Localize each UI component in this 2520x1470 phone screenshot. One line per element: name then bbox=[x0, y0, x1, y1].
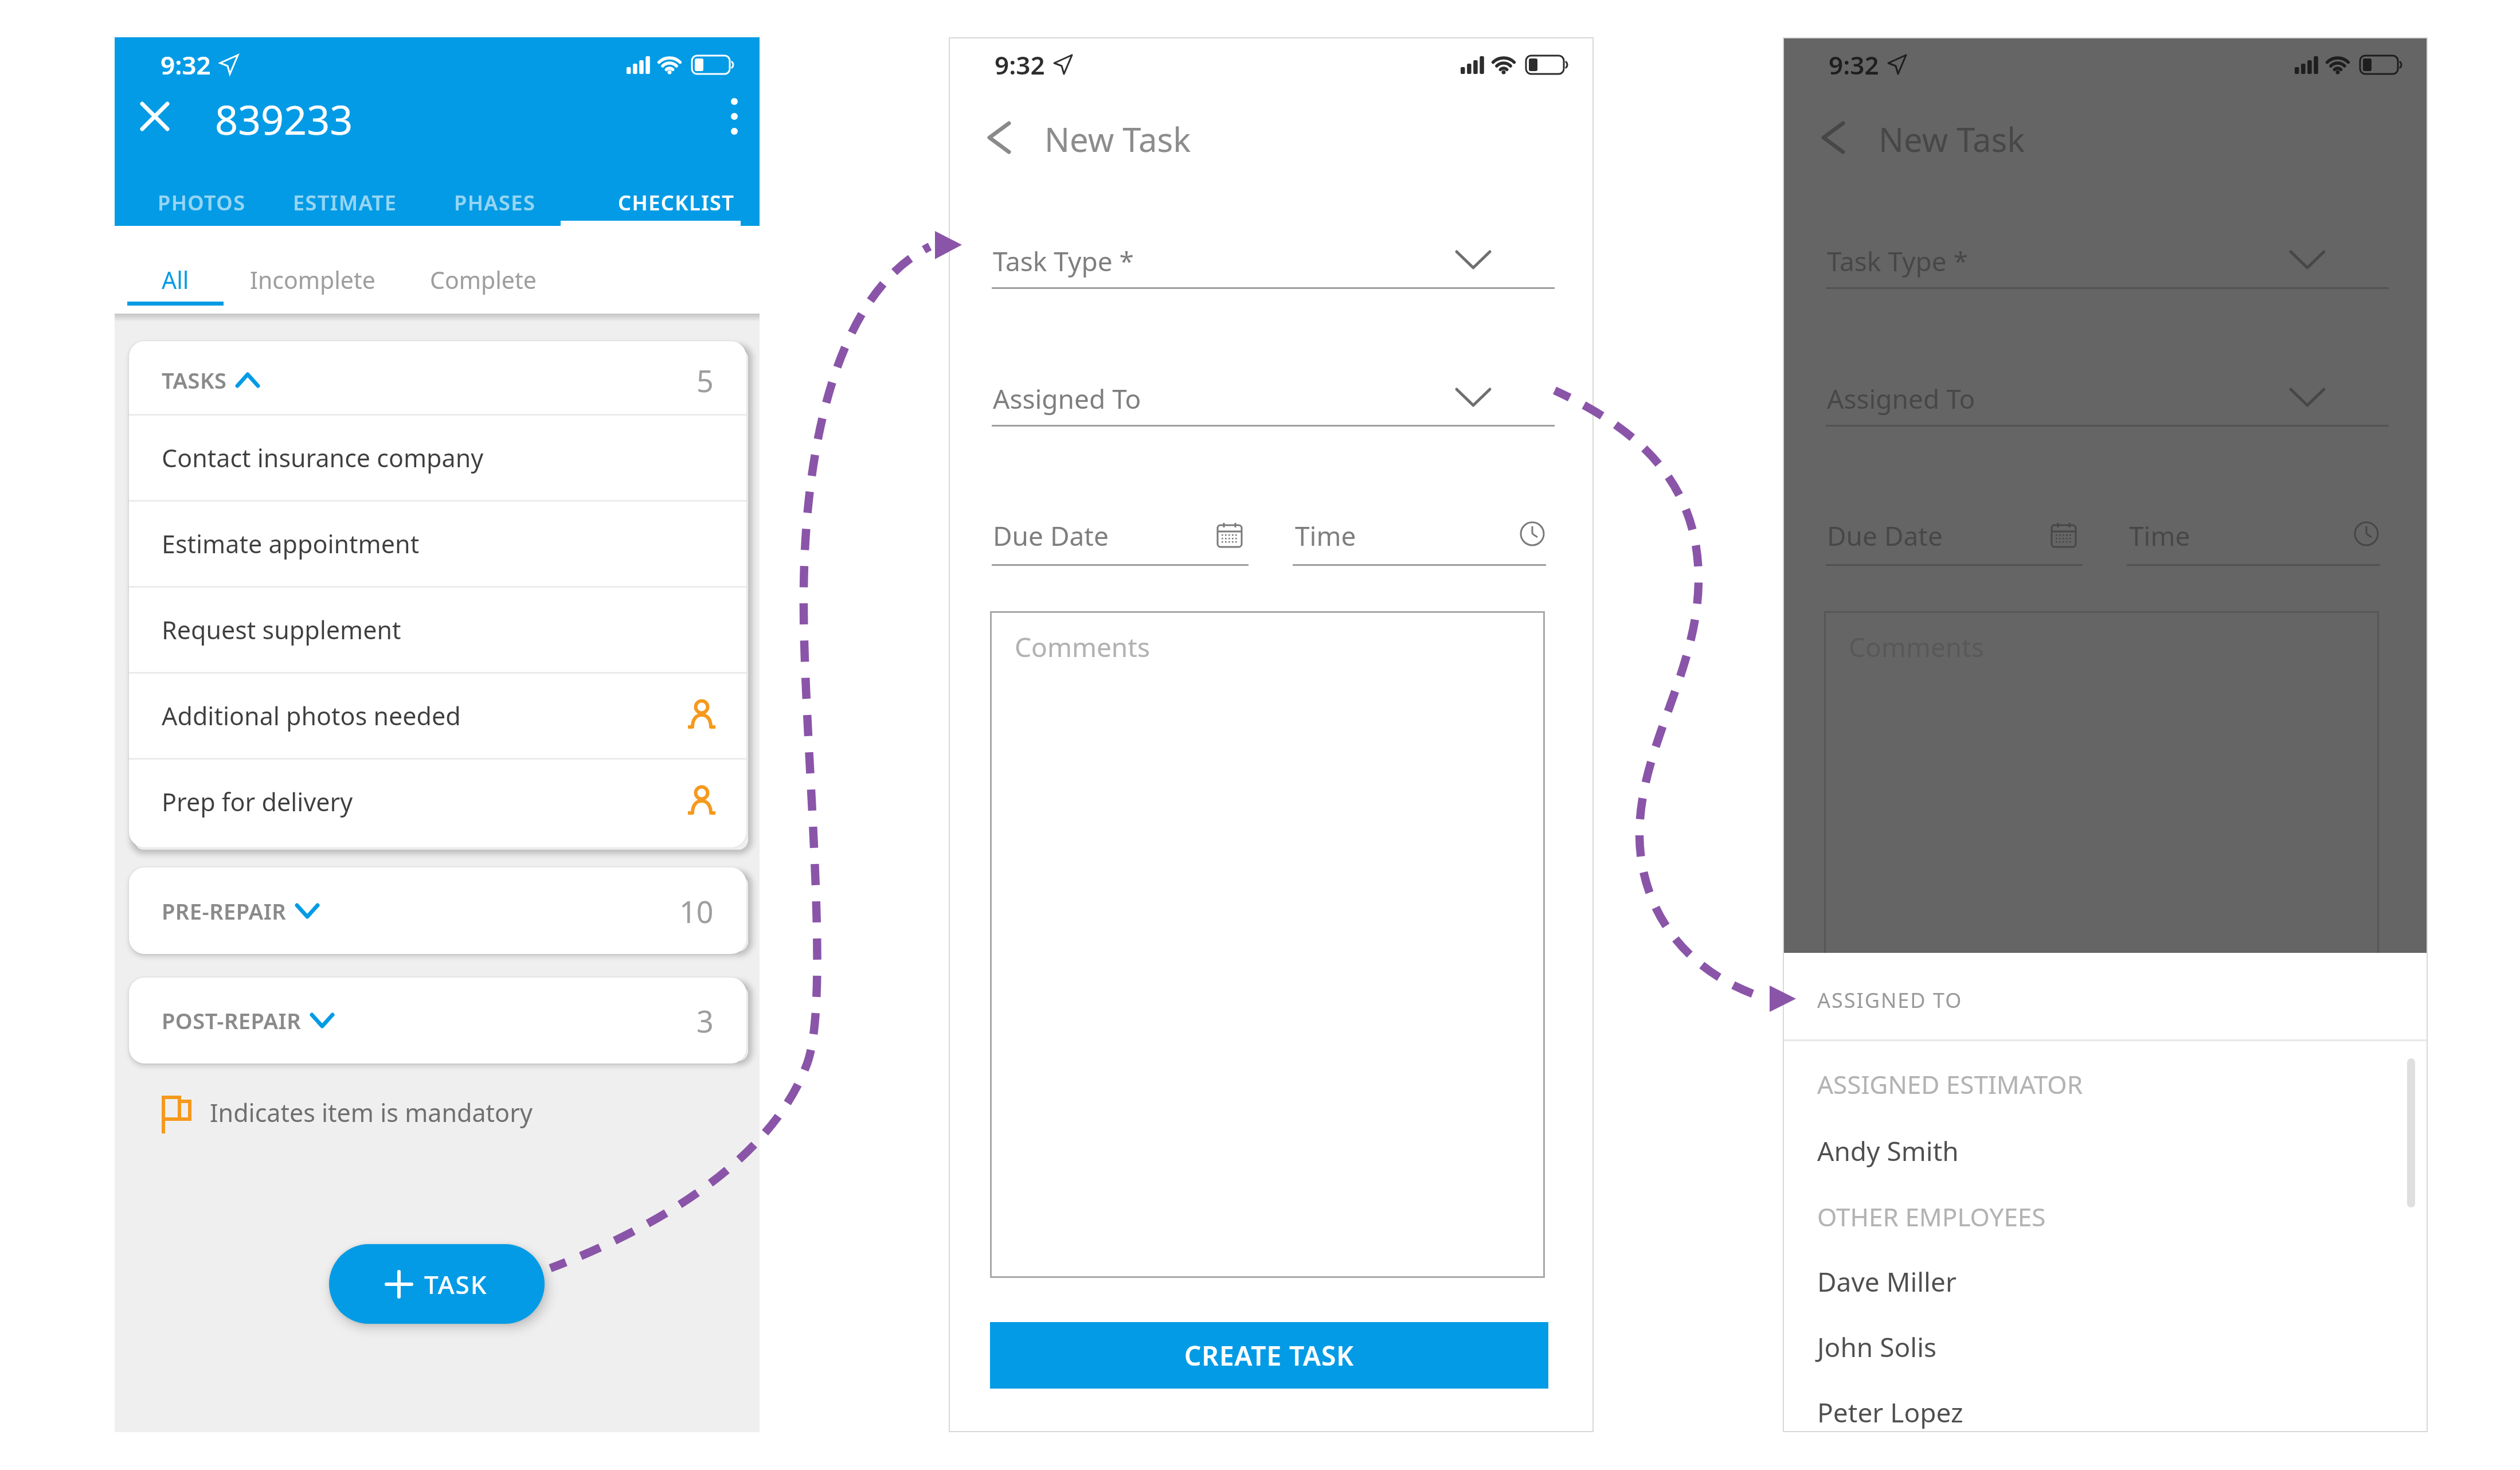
staticText: Prep for delivery bbox=[162, 785, 353, 819]
staticText: Time bbox=[1295, 518, 1356, 554]
staticText: Assigned To bbox=[993, 381, 1141, 417]
button[interactable] bbox=[424, 226, 562, 314]
staticText: John Solis bbox=[1817, 1329, 1937, 1365]
button[interactable]: POST-REPAIR bbox=[129, 978, 746, 1064]
staticText: Andy Smith bbox=[1817, 1133, 1959, 1169]
button[interactable] bbox=[1783, 1248, 2428, 1315]
staticText: Task Type * bbox=[993, 243, 1134, 279]
staticText: PHOTOS bbox=[158, 189, 246, 217]
staticText: Indicates item is mandatory bbox=[210, 1096, 533, 1129]
button[interactable]: PRE-REPAIR bbox=[129, 867, 746, 954]
button[interactable] bbox=[976, 115, 1022, 161]
staticText: All bbox=[162, 264, 189, 296]
staticText: CHECKLIST bbox=[618, 189, 735, 217]
staticText: Peter Lopez bbox=[1817, 1394, 1963, 1430]
button[interactable] bbox=[990, 226, 1555, 290]
button[interactable] bbox=[252, 226, 390, 314]
button[interactable]: TASK bbox=[329, 1244, 545, 1324]
staticText: PHASES bbox=[454, 189, 536, 217]
button[interactable] bbox=[138, 99, 172, 134]
staticText: Assigned To bbox=[1827, 381, 1975, 417]
button[interactable] bbox=[127, 226, 224, 314]
button[interactable] bbox=[129, 758, 746, 844]
staticText: Request supplement bbox=[162, 613, 401, 647]
staticText: Additional photos needed bbox=[162, 699, 461, 733]
staticText: 3 bbox=[696, 1000, 714, 1041]
staticText: CREATE TASK bbox=[1184, 1338, 1355, 1374]
staticText: OTHER EMPLOYEES bbox=[1817, 1199, 2046, 1234]
button[interactable] bbox=[129, 586, 746, 672]
staticText: PRE-REPAIR bbox=[162, 896, 287, 926]
staticText: New Task bbox=[1879, 116, 2025, 162]
button[interactable] bbox=[717, 97, 752, 136]
button[interactable] bbox=[129, 414, 746, 500]
staticText: TASK bbox=[424, 1267, 488, 1301]
staticText: 9:32 bbox=[995, 48, 1045, 82]
staticText: Due Date bbox=[1827, 518, 1943, 554]
staticText: Due Date bbox=[993, 518, 1109, 554]
staticText: ASSIGNED TO bbox=[1817, 986, 1963, 1014]
staticText: Contact insurance company bbox=[162, 441, 484, 475]
button[interactable]: CREATE TASK bbox=[990, 1322, 1548, 1389]
staticText: ESTIMATE bbox=[293, 189, 397, 217]
button[interactable] bbox=[150, 181, 253, 224]
staticText: TASKS bbox=[162, 365, 227, 395]
staticText: 839233 bbox=[215, 92, 353, 143]
staticText: Estimate appointment bbox=[162, 527, 420, 561]
staticText: 10 bbox=[679, 891, 714, 932]
button[interactable] bbox=[1783, 1379, 2428, 1445]
staticText: Complete bbox=[430, 264, 537, 296]
button[interactable] bbox=[990, 364, 1555, 427]
button[interactable] bbox=[443, 181, 546, 224]
staticText: Time bbox=[2129, 518, 2190, 554]
staticText: 9:32 bbox=[161, 48, 211, 82]
button[interactable] bbox=[613, 181, 739, 224]
button[interactable] bbox=[990, 502, 1248, 566]
button[interactable] bbox=[294, 181, 397, 224]
staticText: POST-REPAIR bbox=[162, 1006, 302, 1035]
staticText: Comments bbox=[1849, 629, 1984, 665]
staticText: 9:32 bbox=[1829, 48, 1879, 82]
button[interactable] bbox=[129, 672, 746, 758]
staticText: Comments bbox=[1015, 629, 1150, 665]
button[interactable] bbox=[1783, 1117, 2428, 1184]
staticText: New Task bbox=[1044, 116, 1191, 162]
button[interactable]: Comments bbox=[990, 611, 1545, 1278]
staticText: ASSIGNED ESTIMATOR bbox=[1817, 1067, 2083, 1101]
staticText: Task Type * bbox=[1827, 243, 1968, 279]
staticText: Incomplete bbox=[250, 264, 375, 296]
staticText: 5 bbox=[696, 360, 714, 401]
button[interactable] bbox=[1783, 1313, 2428, 1380]
button[interactable] bbox=[1293, 502, 1548, 566]
staticText: Dave Miller bbox=[1817, 1264, 1956, 1300]
button[interactable] bbox=[129, 500, 746, 586]
